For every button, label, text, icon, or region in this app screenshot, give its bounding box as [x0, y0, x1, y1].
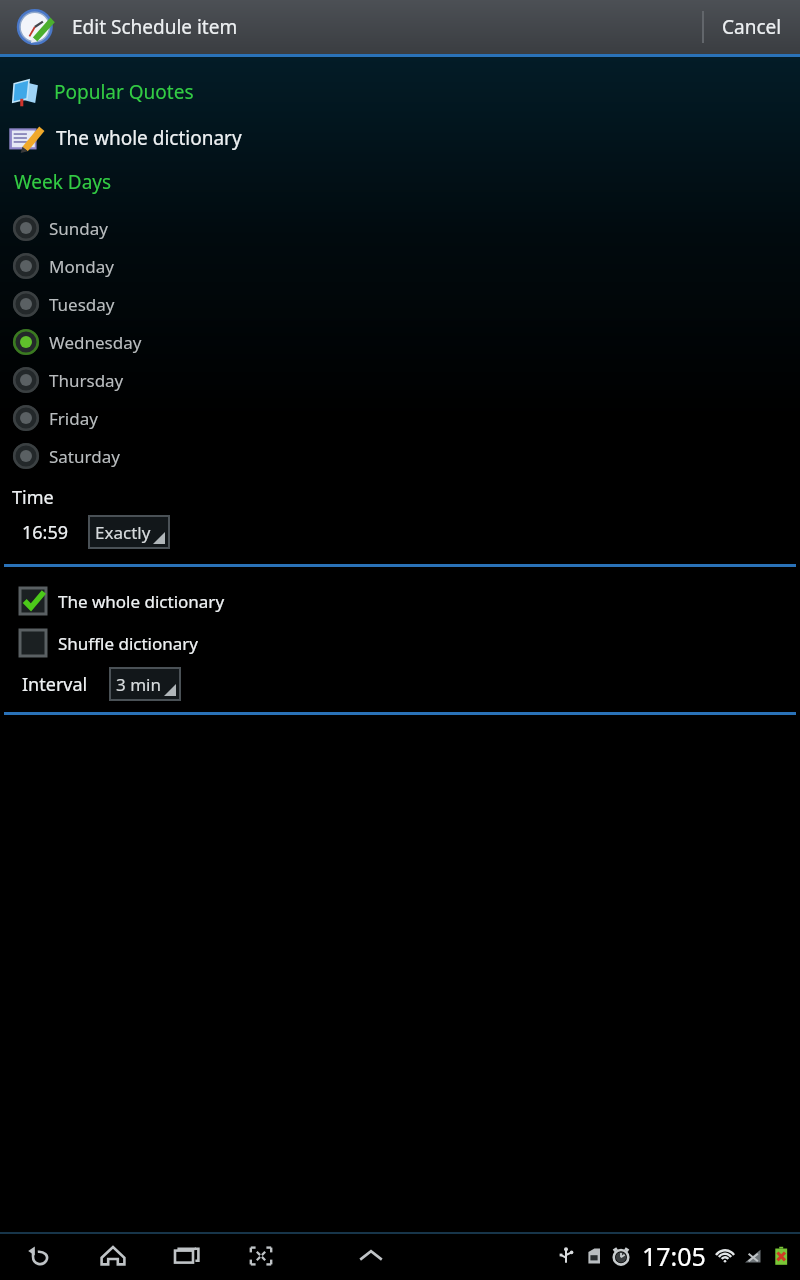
staticText: Popular Quotes — [54, 79, 194, 105]
button[interactable]: 3 min — [110, 668, 180, 700]
button[interactable]: The whole dictionary — [0, 114, 800, 162]
staticText: Sunday — [49, 217, 109, 240]
button[interactable]: Popular Quotes — [0, 73, 800, 111]
button[interactable]: Friday — [0, 399, 800, 437]
staticText: 3 min — [116, 673, 161, 696]
button[interactable]: Recent apps — [170, 1239, 204, 1273]
staticText: Monday — [49, 255, 114, 278]
button[interactable]: Screenshot — [244, 1239, 278, 1273]
staticText: The whole dictionary — [58, 590, 225, 613]
staticText: 17:05 — [642, 1239, 706, 1273]
button[interactable]: Sunday — [0, 209, 800, 247]
staticText: Cancel — [722, 14, 782, 40]
button[interactable]: Shuffle dictionary — [0, 626, 800, 660]
staticText: Week Days — [14, 169, 112, 195]
staticText: Shuffle dictionary — [58, 632, 198, 655]
staticText: Saturday — [49, 445, 120, 468]
button[interactable]: Monday — [0, 247, 800, 285]
button[interactable]: Back — [22, 1239, 56, 1273]
staticText: Friday — [49, 407, 98, 430]
button[interactable]: Exactly — [89, 516, 169, 548]
button[interactable]: Edit Schedule item — [0, 1, 246, 53]
button[interactable]: Home — [96, 1239, 130, 1273]
staticText: Thursday — [49, 369, 124, 392]
button[interactable]: Wednesday — [0, 323, 800, 361]
button[interactable]: 16:59 — [22, 518, 69, 547]
staticText: The whole dictionary — [56, 125, 242, 151]
staticText: Edit Schedule item — [72, 14, 238, 40]
button[interactable]: Cancel — [704, 0, 800, 54]
staticText: Tuesday — [49, 293, 115, 316]
button[interactable]: Saturday — [0, 437, 800, 475]
staticText: Time — [12, 485, 54, 510]
button[interactable]: Tuesday — [0, 285, 800, 323]
staticText: Wednesday — [49, 331, 142, 354]
button[interactable]: Thursday — [0, 361, 800, 399]
staticText: Interval — [22, 672, 88, 697]
button[interactable]: The whole dictionary — [0, 584, 800, 618]
staticText: Exactly — [95, 521, 151, 544]
button[interactable]: Expand — [354, 1239, 388, 1273]
staticText: 16:59 — [22, 520, 69, 545]
